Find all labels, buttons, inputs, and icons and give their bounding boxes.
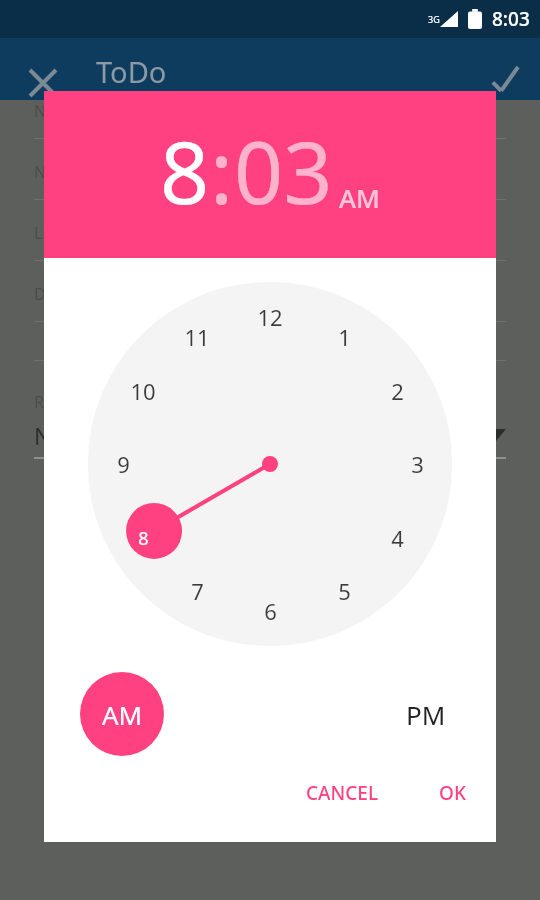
button[interactable]: 8 — [121, 516, 165, 560]
staticText: Due date — [34, 283, 103, 305]
staticText: Name — [34, 100, 80, 122]
button[interactable]: 1 — [322, 315, 366, 359]
button[interactable]: 12 — [248, 295, 292, 339]
staticText: Recurrence — [34, 391, 120, 413]
staticText: 8:03 — [492, 6, 530, 32]
button[interactable]: 2 — [375, 369, 419, 413]
staticText: No specific recurrence — [34, 420, 275, 451]
button[interactable]: AM — [80, 672, 164, 756]
button[interactable]: 8 — [160, 112, 210, 229]
button[interactable]: 10 — [121, 369, 165, 413]
staticText: 3 — [411, 449, 424, 479]
staticText: Notes — [34, 161, 79, 183]
other: Close — [30, 70, 56, 96]
button[interactable]: 6 — [248, 589, 292, 633]
staticText: 03 — [234, 112, 333, 229]
staticText: 11 — [184, 322, 210, 352]
button[interactable]: AM — [339, 180, 380, 215]
staticText: 9 — [117, 449, 130, 479]
other: Save — [490, 67, 518, 95]
staticText: CANCEL — [306, 780, 379, 806]
staticText: 8 — [160, 112, 210, 229]
staticText: PM — [406, 697, 446, 732]
staticText: 12 — [257, 302, 283, 332]
button[interactable]: 11 — [175, 315, 219, 359]
button[interactable]: 5 — [322, 569, 366, 613]
staticText: AM — [102, 697, 143, 732]
button[interactable]: 7 — [175, 569, 219, 613]
staticText: OK — [439, 780, 466, 806]
button[interactable]: CANCEL — [292, 770, 393, 816]
staticText: 8 — [138, 526, 149, 551]
button[interactable]: 03 — [234, 112, 333, 229]
staticText: 6 — [264, 596, 277, 626]
button[interactable]: 9 — [101, 442, 145, 486]
staticText: 4 — [391, 523, 404, 553]
staticText: ToDo — [96, 52, 167, 91]
staticText: 2 — [391, 376, 404, 406]
button[interactable]: OK — [425, 770, 480, 816]
staticText: 3G — [428, 13, 440, 25]
staticText: 5 — [338, 576, 351, 606]
staticText: 7 — [191, 576, 204, 606]
button[interactable]: 4 — [375, 516, 419, 560]
staticText: AM — [339, 180, 380, 215]
staticText: 1 — [338, 322, 351, 352]
button[interactable]: PM — [384, 672, 468, 756]
staticText: 10 — [130, 376, 156, 406]
staticText: Lists — [34, 222, 68, 244]
staticText: : — [210, 112, 234, 229]
button[interactable]: 3 — [395, 442, 439, 486]
